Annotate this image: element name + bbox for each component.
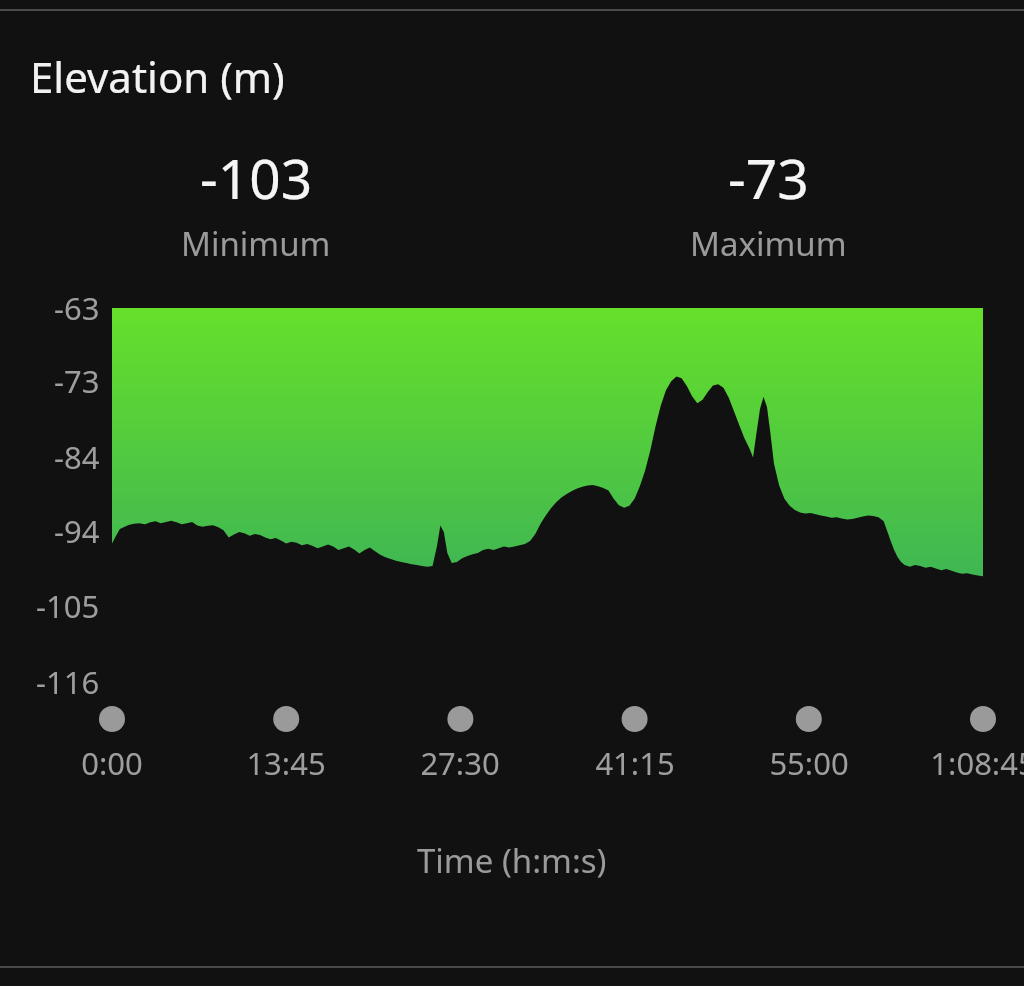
button[interactable]: Elevation profile chart	[112, 308, 983, 606]
staticText: -103	[200, 140, 313, 215]
staticText: Time (h:m:s)	[417, 838, 607, 883]
staticText: 41:15	[595, 742, 675, 784]
staticText: 0:00	[81, 742, 143, 784]
staticText: -73	[728, 140, 809, 215]
button[interactable]: Elevation (m)	[30, 48, 285, 105]
staticText: -73	[54, 360, 100, 402]
staticText: 55:00	[769, 742, 849, 784]
button[interactable]: -103	[0, 140, 512, 266]
staticText: -105	[36, 585, 100, 627]
button[interactable]: -73	[512, 140, 1024, 266]
staticText: Minimum	[181, 221, 331, 266]
staticText: Maximum	[690, 221, 847, 266]
staticText: 1:08:45	[930, 742, 1024, 784]
staticText: -94	[54, 510, 100, 552]
staticText: -84	[54, 436, 100, 478]
staticText: -116	[36, 661, 100, 703]
staticText: 27:30	[420, 742, 500, 784]
staticText: 13:45	[246, 742, 326, 784]
staticText: Elevation (m)	[30, 48, 285, 105]
staticText: -63	[54, 287, 100, 329]
